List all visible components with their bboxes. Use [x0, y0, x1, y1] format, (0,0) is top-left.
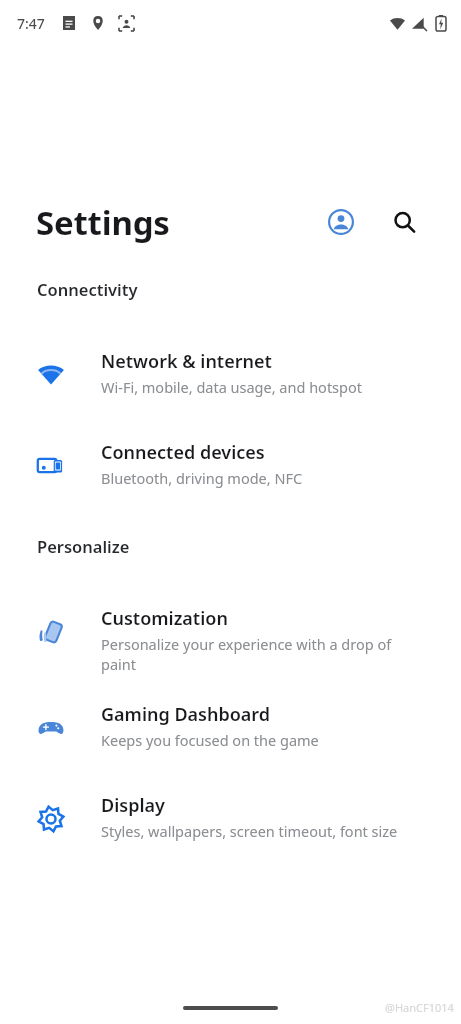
staticText: Display	[101, 793, 165, 818]
staticText: Gaming Dashboard	[101, 702, 271, 727]
staticText: Connected devices	[101, 440, 265, 465]
button[interactable]: Gaming Dashboard	[0, 702, 461, 750]
staticText: Personalize	[37, 535, 130, 557]
staticText: @HanCF1014	[385, 1000, 454, 1015]
button[interactable]: Customization	[0, 606, 461, 674]
staticText: Wi-Fi, mobile, data usage, and hotspot	[101, 377, 362, 397]
staticText: Keeps you focused on the game	[101, 730, 319, 750]
staticText: Connectivity	[37, 278, 138, 300]
button[interactable]: Account	[320, 201, 362, 243]
button[interactable]: Connected devices	[0, 440, 461, 488]
staticText: Settings	[36, 200, 170, 245]
button[interactable]: Search	[383, 201, 425, 243]
staticText: Bluetooth, driving mode, NFC	[101, 468, 303, 488]
staticText: Styles, wallpapers, screen timeout, font…	[101, 821, 398, 841]
staticText: 7:47	[17, 14, 45, 33]
staticText: Customization	[101, 606, 228, 631]
staticText: Network & internet	[101, 349, 272, 374]
button[interactable]: Network & internet	[0, 349, 461, 397]
staticText: Personalize your experience with a drop …	[101, 634, 425, 674]
button[interactable]: Display	[0, 793, 461, 841]
